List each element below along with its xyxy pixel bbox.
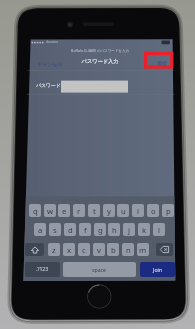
staticText: d [68, 225, 73, 235]
staticText: y [107, 206, 111, 216]
button[interactable]: c [78, 243, 90, 256]
button[interactable]: space [63, 262, 136, 277]
staticText: n [126, 245, 131, 255]
staticText: docomo [46, 40, 59, 44]
button[interactable]: y [103, 204, 115, 217]
staticText: Join [153, 266, 163, 273]
button[interactable]: b [107, 243, 119, 256]
staticText: t [93, 206, 96, 216]
staticText: Buffalo-G-4A80 のパスワードを入力 [54, 48, 146, 53]
staticText: g [98, 225, 103, 235]
staticText: r [77, 206, 81, 216]
button[interactable]: l [153, 223, 165, 236]
staticText: b [111, 245, 116, 255]
staticText: a [38, 225, 43, 235]
staticText: k [142, 225, 147, 235]
button[interactable]: s [49, 223, 61, 236]
staticText: c [82, 245, 86, 255]
staticText: s [53, 225, 57, 235]
staticText: o [151, 206, 156, 216]
staticText: .?123 [36, 266, 49, 273]
button[interactable]: r [73, 204, 85, 217]
button[interactable]: u [117, 204, 129, 217]
button[interactable]: q [29, 204, 41, 217]
button[interactable]: i [132, 204, 144, 217]
staticText: x [67, 245, 72, 255]
staticText: z [52, 245, 56, 255]
staticText: p [166, 206, 171, 216]
button[interactable]: w [44, 204, 56, 217]
button[interactable]: e [58, 204, 70, 217]
button[interactable]: .?123 [25, 262, 60, 277]
button[interactable]: a [34, 223, 46, 236]
staticText: 接続 [157, 60, 167, 66]
staticText: m [139, 245, 147, 255]
button[interactable]: k [138, 223, 150, 236]
button[interactable]: v [93, 243, 105, 256]
staticText: パスワード入力 [60, 58, 140, 65]
button[interactable]: z [48, 243, 60, 256]
button[interactable]: Delete [156, 243, 173, 256]
button[interactable]: Shift [25, 243, 44, 256]
staticText: e [62, 206, 67, 216]
staticText: q [33, 206, 38, 216]
staticText: パスワード [36, 82, 61, 88]
staticText: w [47, 206, 54, 216]
button[interactable]: m [137, 243, 149, 256]
staticText: v [97, 245, 101, 255]
button[interactable]: d [64, 223, 76, 236]
button[interactable]: g [94, 223, 106, 236]
staticText: f [84, 225, 87, 235]
staticText: h [112, 225, 117, 235]
button[interactable] [27, 71, 175, 95]
button[interactable]: t [88, 204, 100, 217]
button[interactable]: f [79, 223, 91, 236]
button[interactable]: Join [140, 262, 175, 277]
staticText: キャンセル [37, 61, 63, 67]
button[interactable]: x [63, 243, 75, 256]
button[interactable]: 接続 [152, 57, 172, 68]
staticText: space [92, 266, 107, 273]
button[interactable]: h [108, 223, 120, 236]
button[interactable]: キャンセル [33, 58, 67, 69]
button[interactable]: j [123, 223, 135, 236]
staticText: i [137, 206, 139, 216]
button[interactable]: p [162, 204, 174, 217]
staticText: u [121, 206, 126, 216]
button[interactable]: n [122, 243, 134, 256]
staticText: l [158, 225, 160, 235]
staticText: j [128, 225, 130, 235]
button[interactable]: o [147, 204, 159, 217]
